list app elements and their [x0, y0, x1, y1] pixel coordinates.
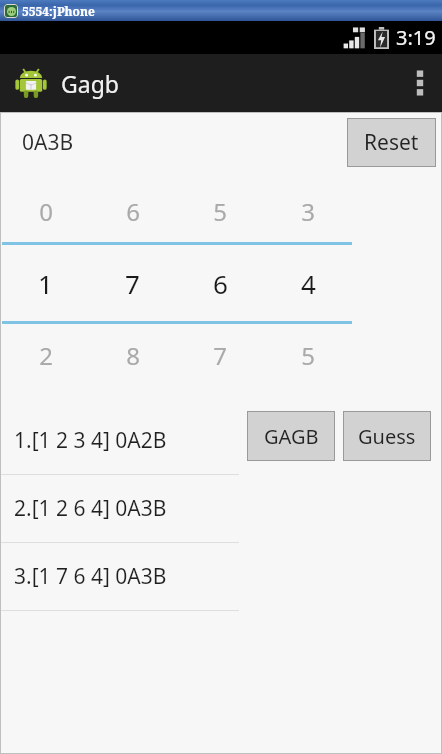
button[interactable]: 6 [89, 180, 176, 242]
button[interactable]: 5 [176, 180, 264, 242]
staticText: 5554:jPhone [22, 3, 95, 19]
staticText: 7 [213, 339, 227, 372]
staticText: 5 [213, 195, 227, 228]
staticText: Gagb [61, 68, 119, 99]
button[interactable]: 5 [264, 324, 352, 386]
staticText: 1 [38, 266, 53, 301]
staticText: 2 [39, 339, 53, 372]
button[interactable]: Reset [347, 118, 436, 167]
staticText: 2.[1 2 6 4] 0A3B [14, 494, 167, 523]
button[interactable]: 2.[1 2 6 4] 0A3B [0, 475, 239, 542]
staticText: 7 [125, 266, 140, 301]
button[interactable]: Guess [343, 411, 431, 461]
staticText: 5 [301, 339, 315, 372]
button[interactable]: 7 [89, 245, 176, 321]
button[interactable]: GAGB [247, 411, 335, 461]
staticText: 0A3B [22, 128, 74, 157]
button[interactable]: 0 [2, 180, 89, 242]
staticText: Guess [358, 423, 416, 450]
button[interactable]: 1 [2, 245, 89, 321]
staticText: 3 [301, 195, 315, 228]
staticText: 0 [39, 195, 53, 228]
staticText: GAGB [264, 423, 319, 450]
staticText: 6 [126, 195, 140, 228]
staticText: 8 [126, 339, 140, 372]
button[interactable]: 7 [176, 324, 264, 386]
button[interactable]: 6 [176, 245, 264, 321]
button[interactable]: 8 [89, 324, 176, 386]
staticText: 3.[1 7 6 4] 0A3B [14, 562, 167, 591]
staticText: 1.[1 2 3 4] 0A2B [14, 426, 167, 455]
button[interactable]: 4 [264, 245, 352, 321]
staticText: 6 [213, 266, 228, 301]
staticText: 4 [301, 266, 316, 301]
button[interactable]: More options [398, 54, 442, 112]
staticText: 3:19 [396, 24, 436, 51]
button[interactable]: 3.[1 7 6 4] 0A3B [0, 543, 239, 610]
button[interactable]: 3 [264, 180, 352, 242]
button[interactable]: 2 [2, 324, 89, 386]
button[interactable]: 1.[1 2 3 4] 0A2B [0, 407, 239, 474]
staticText: Reset [364, 128, 419, 157]
